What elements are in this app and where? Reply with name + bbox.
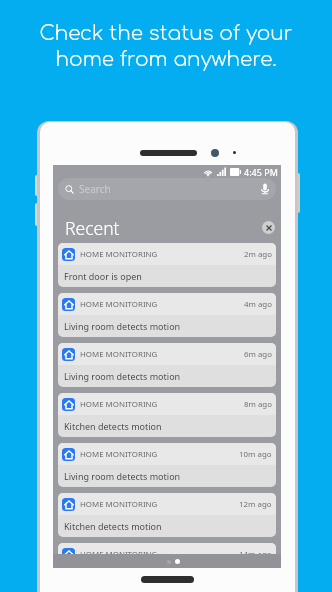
button[interactable]: HOME MONITORING (58, 243, 276, 287)
staticText: 10m ago (239, 449, 272, 460)
button[interactable]: HOME MONITORING (58, 493, 276, 537)
staticText: Kitchen detects motion (64, 520, 162, 532)
button[interactable]: Clear recent (262, 221, 275, 234)
button[interactable]: HOME MONITORING (58, 393, 276, 437)
staticText: 8m ago (244, 399, 272, 410)
button[interactable]: HOME MONITORING (58, 543, 276, 568)
button[interactable]: HOME MONITORING (58, 343, 276, 387)
button[interactable]: HOME MONITORING (58, 293, 276, 337)
staticText: Search (79, 182, 111, 196)
staticText: HOME MONITORING (80, 349, 158, 360)
staticText: 2m ago (244, 249, 272, 260)
staticText: Living room detects motion (64, 470, 181, 482)
staticText: Front door is open (64, 270, 142, 282)
staticText: Living room detects motion (64, 320, 181, 332)
staticText: HOME MONITORING (80, 449, 158, 460)
staticText: 4m ago (244, 299, 272, 310)
staticText: Check the status of your home from anywh… (0, 22, 332, 70)
staticText: HOME MONITORING (80, 249, 158, 260)
staticText: 12m ago (239, 499, 272, 510)
button[interactable]: Search (58, 178, 276, 200)
staticText: 4:45 PM (244, 166, 278, 178)
staticText: 14m ago (239, 549, 272, 560)
staticText: HOME MONITORING (80, 499, 158, 510)
staticText: Kitchen detects motion (64, 420, 162, 432)
staticText: HOME MONITORING (80, 549, 158, 560)
staticText: Living room detects motion (64, 370, 181, 382)
staticText: 6m ago (244, 349, 272, 360)
staticText: HOME MONITORING (80, 299, 158, 310)
button[interactable]: HOME MONITORING (58, 443, 276, 487)
staticText: Recent (65, 216, 120, 240)
button[interactable]: Voice search (255, 179, 275, 199)
staticText: HOME MONITORING (80, 399, 158, 410)
